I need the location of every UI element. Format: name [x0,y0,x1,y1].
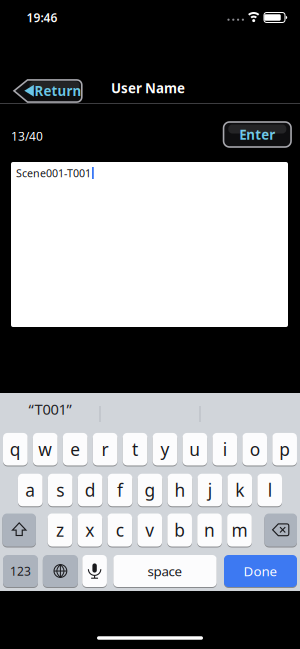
button[interactable]: d [78,474,102,506]
button[interactable]: q [3,433,28,465]
staticText: k [235,478,244,501]
button[interactable]: k [227,474,252,506]
staticText: “T001” [28,399,71,419]
button[interactable]: l [257,474,282,506]
button[interactable]: p [272,433,297,465]
staticText: h [174,478,185,501]
button[interactable]: 123 [3,555,38,587]
staticText: m [231,518,247,541]
staticText: c [116,518,124,541]
staticText: z [56,518,64,541]
staticText: 13/40 [11,128,43,144]
button[interactable]: s [48,474,73,506]
staticText: b [174,518,185,541]
button[interactable]: User name input [11,162,288,327]
button[interactable]: x [77,513,102,546]
staticText: Enter [239,126,275,143]
button[interactable]: i [212,433,237,465]
staticText: a [25,478,35,501]
staticText: e [70,438,80,461]
staticText: q [10,438,21,461]
staticText: Return [34,82,81,100]
button[interactable]: Return [13,79,83,103]
button[interactable]: Dictate [82,555,107,587]
button[interactable]: r [93,433,117,465]
staticText: g [144,478,155,501]
button[interactable]: w [33,433,58,465]
staticText: 19:46 [26,9,57,25]
button[interactable]: o [242,433,267,465]
staticText: r [102,438,109,461]
staticText: l [268,478,272,501]
button[interactable]: b [167,513,192,546]
staticText: n [204,518,215,541]
staticText: v [145,518,154,541]
staticText: space [147,562,182,580]
button[interactable]: Shift [2,513,36,546]
staticText: f [117,478,123,501]
staticText: 123 [10,563,31,579]
button[interactable]: Enter [224,122,291,147]
button[interactable]: g [138,474,162,506]
staticText: j [208,478,212,501]
staticText: Done [243,562,277,580]
button[interactable]: j [197,474,222,506]
staticText: o [250,438,260,461]
button[interactable]: y [153,433,177,465]
button[interactable]: f [108,474,132,506]
button[interactable]: e [63,433,87,465]
staticText: d [85,478,96,501]
button[interactable]: m [227,513,252,546]
button[interactable]: c [107,513,132,546]
staticText: y [160,438,169,461]
staticText: p [279,438,290,461]
button[interactable]: z [48,513,72,546]
button[interactable]: h [168,474,192,506]
staticText: User Name [111,79,185,97]
button[interactable]: space [113,555,217,587]
button[interactable]: n [197,513,222,546]
button[interactable]: v [137,513,162,546]
staticText: s [56,478,64,501]
button[interactable]: “T001” [1,394,99,424]
button[interactable]: u [182,433,207,465]
button[interactable]: a [18,474,43,506]
staticText: Scene001-T001 [16,166,91,180]
button[interactable]: Delete [264,513,297,546]
staticText: i [223,438,227,461]
staticText: x [85,518,94,541]
button[interactable]: Done [224,555,297,587]
staticText: t [132,438,138,461]
staticText: u [189,438,200,461]
staticText: w [38,438,52,461]
button[interactable]: t [123,433,147,465]
button[interactable]: Next keyboard [43,555,78,587]
